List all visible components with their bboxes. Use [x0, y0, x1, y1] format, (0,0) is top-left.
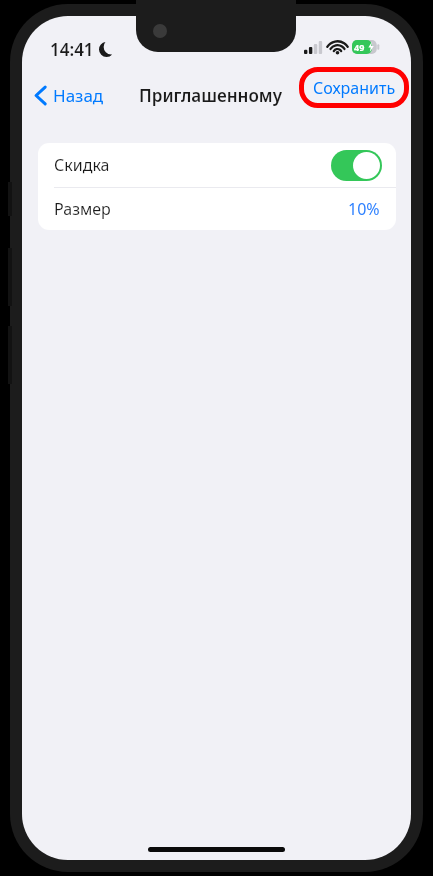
button[interactable]: Размер — [38, 188, 396, 230]
staticText: 10% — [348, 198, 380, 220]
staticText: 49 — [354, 41, 365, 53]
button[interactable]: Скидка включена — [331, 150, 382, 181]
staticText: Размер — [54, 198, 111, 220]
button[interactable]: Скидка — [38, 143, 396, 187]
button[interactable]: Назад — [28, 78, 110, 113]
staticText: 14:41 — [50, 38, 94, 61]
button[interactable]: Сохранить — [299, 67, 409, 108]
staticText: Назад — [53, 84, 104, 107]
staticText: Приглашенному — [139, 84, 282, 107]
staticText: Скидка — [54, 154, 110, 176]
staticText: Сохранить — [313, 77, 396, 99]
